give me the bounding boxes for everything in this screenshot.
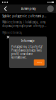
button[interactable]: Profile — [47, 4, 54, 13]
button[interactable]: Back — [2, 4, 9, 13]
staticText: Informacje — [21, 39, 35, 43]
staticText: Szukam pracy — [20, 7, 35, 10]
staticText: WYŚLIJ — [37, 62, 41, 63]
staticText: Połączysz się z tą ofertą? Pracodawca zo… — [11, 45, 42, 59]
staticText: Szybkie połączenie z ofertami pracy — [2, 14, 46, 18]
button[interactable]: WYŚLIJ — [34, 59, 45, 66]
staticText: Wybierz branżę — [2, 31, 22, 34]
staticText: Wybierz branżę i lokalizację, a my dopas… — [2, 20, 46, 28]
